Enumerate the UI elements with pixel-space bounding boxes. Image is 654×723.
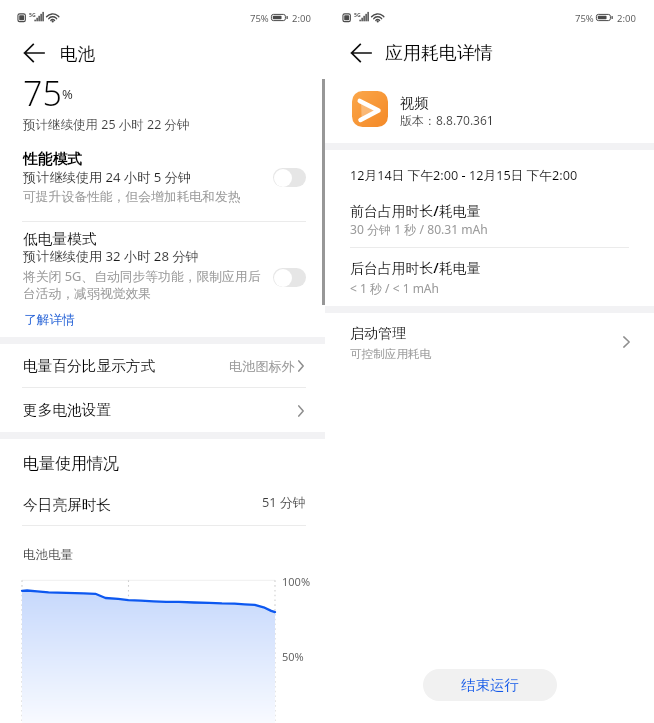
staticText: 台活动，减弱视觉效果	[23, 286, 151, 302]
staticText: 视频	[400, 94, 429, 112]
staticText: 预计继续使用 24 小时 5 分钟	[23, 168, 192, 186]
button[interactable]: 结束运行	[423, 669, 557, 701]
staticText: < 1 秒 / < 1 mAh	[350, 280, 439, 296]
staticText: 30 分钟 1 秒 / 80.31 mAh	[350, 221, 488, 238]
staticText: 更多电池设置	[23, 401, 112, 420]
button[interactable]: 了解详情	[24, 312, 75, 328]
staticText: 启动管理	[350, 325, 406, 343]
staticText: 预计继续使用 25 小时 22 分钟	[23, 116, 190, 133]
staticText: 100%	[282, 574, 311, 589]
button[interactable]: Toggle off	[273, 168, 306, 187]
staticText: 75	[23, 70, 62, 116]
staticText: 12月14日 下午2:00 - 12月15日 下午2:00	[350, 166, 578, 183]
staticText: 电池	[60, 43, 96, 65]
staticText: 应用耗电详情	[385, 42, 493, 65]
button[interactable]	[0, 387, 325, 432]
staticText: 后台占用时长/耗电量	[350, 258, 481, 277]
staticText: 性能模式	[23, 150, 82, 169]
staticText: 可提升设备性能，但会增加耗电和发热	[23, 189, 241, 205]
staticText: 电池图标外	[229, 358, 295, 375]
staticText: 75%	[575, 12, 594, 25]
button[interactable]: Toggle off	[273, 268, 306, 287]
staticText: 低电量模式	[23, 230, 97, 249]
staticText: 电池电量	[23, 547, 74, 563]
staticText: 结束运行	[461, 676, 519, 694]
staticText: 电量百分比显示方式	[23, 357, 156, 376]
staticText: 今日亮屏时长	[23, 496, 112, 515]
staticText: 前台占用时长/耗电量	[350, 201, 481, 220]
staticText: 版本：8.8.70.361	[400, 112, 494, 128]
button[interactable]	[0, 344, 325, 387]
staticText: 2:00	[292, 12, 311, 25]
staticText: 5G	[354, 11, 361, 18]
staticText: 50%	[282, 649, 304, 664]
button[interactable]: Back	[342, 35, 380, 73]
staticText: 可控制应用耗电	[350, 347, 432, 362]
staticText: 5G	[29, 11, 36, 18]
staticText: 了解详情	[24, 312, 75, 328]
button[interactable]	[325, 313, 654, 365]
staticText: %	[62, 85, 73, 103]
staticText: 2:00	[617, 12, 636, 25]
staticText: 将关闭 5G、自动同步等功能，限制应用后	[23, 267, 261, 284]
button[interactable]: Back	[15, 35, 53, 73]
staticText: 预计继续使用 32 小时 28 分钟	[23, 247, 199, 265]
staticText: 75%	[250, 12, 269, 25]
staticText: 51 分钟	[262, 493, 306, 510]
staticText: 电量使用情况	[23, 454, 119, 474]
